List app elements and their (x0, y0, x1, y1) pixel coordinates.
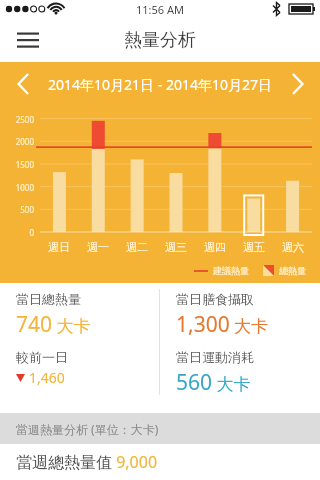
button[interactable]: 當日膳食攝取 (160, 283, 320, 401)
staticText: 500 (0, 204, 34, 215)
button[interactable]: Next week (280, 67, 314, 101)
staticText: 週日 (48, 240, 70, 254)
staticText: 週五 (243, 240, 265, 254)
staticText: 當週總熱量值 9,000 (16, 451, 158, 473)
button[interactable]: 當週總熱量值 9,000 (0, 444, 320, 480)
staticText: 1000 (0, 182, 34, 193)
staticText: 1,300 大卡 (176, 310, 269, 339)
staticText: 當週熱量分析 (單位：大卡) (16, 421, 159, 437)
staticText: 11:56 AM (136, 2, 184, 17)
staticText: 1500 (0, 159, 34, 170)
staticText: 2000 (0, 136, 34, 147)
staticText: 週四 (204, 240, 226, 254)
staticText: 週二 (126, 240, 148, 254)
button[interactable]: 當日總熱量 (0, 283, 159, 401)
staticText: 週六 (282, 240, 304, 254)
staticText: 740 大卡 (16, 310, 91, 339)
staticText: 當日運動消耗 (176, 349, 254, 365)
staticText: 較前一日 (16, 349, 68, 365)
staticText: 2014年10月21日 - 2014年10月27日 (40, 75, 280, 94)
staticText: 當日膳食攝取 (176, 291, 254, 307)
staticText: 週三 (165, 240, 187, 254)
staticText: 總熱量 (279, 265, 306, 276)
staticText: 2500 (0, 114, 34, 125)
staticText: 建議熱量 (213, 265, 249, 276)
staticText: 0 (0, 227, 34, 238)
staticText: 熱量分析 (124, 29, 196, 52)
staticText: 週一 (87, 240, 109, 254)
button[interactable]: Previous week (6, 67, 40, 101)
staticText: 1,460 (29, 368, 65, 387)
staticText: 當日總熱量 (16, 291, 81, 307)
button[interactable]: Menu (8, 20, 48, 60)
staticText: 560 大卡 (176, 368, 251, 397)
